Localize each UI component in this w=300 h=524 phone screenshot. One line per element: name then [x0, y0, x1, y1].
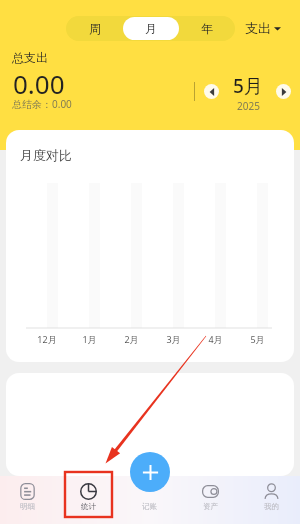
staticText: 5月: [233, 73, 263, 99]
button[interactable]: 年: [179, 16, 235, 41]
button[interactable]: Next month: [276, 84, 291, 99]
button[interactable]: 资产: [180, 476, 241, 524]
staticText: 记账: [142, 502, 157, 511]
button[interactable]: 我的: [241, 476, 300, 524]
staticText: 支出: [245, 20, 271, 36]
staticText: 0.00: [13, 66, 65, 101]
staticText: 2月: [124, 333, 139, 345]
staticText: 明细: [20, 502, 35, 511]
staticText: 1月: [82, 333, 97, 345]
button[interactable]: 支出: [245, 20, 281, 36]
button[interactable]: 记账: [119, 476, 180, 524]
staticText: 5月: [250, 333, 265, 345]
staticText: 3月: [166, 333, 181, 345]
button[interactable]: 周: [66, 16, 123, 41]
staticText: 我的: [264, 502, 279, 511]
staticText: 总结余：0.00: [12, 97, 72, 111]
staticText: 年: [201, 21, 213, 36]
staticText: 月度对比: [20, 147, 72, 163]
staticText: 周: [89, 21, 101, 36]
button[interactable]: 月: [123, 17, 179, 40]
staticText: 2025: [237, 99, 260, 113]
button[interactable]: 统计: [58, 476, 119, 524]
staticText: 统计: [81, 502, 96, 511]
staticText: 4月: [208, 333, 223, 345]
staticText: 12月: [37, 333, 57, 345]
staticText: 月: [145, 21, 157, 36]
button[interactable]: 明细: [0, 476, 58, 524]
staticText: 资产: [203, 502, 218, 511]
staticText: 总支出: [12, 50, 48, 65]
button[interactable]: Previous month: [204, 84, 219, 99]
button[interactable]: 记账: [130, 452, 170, 492]
